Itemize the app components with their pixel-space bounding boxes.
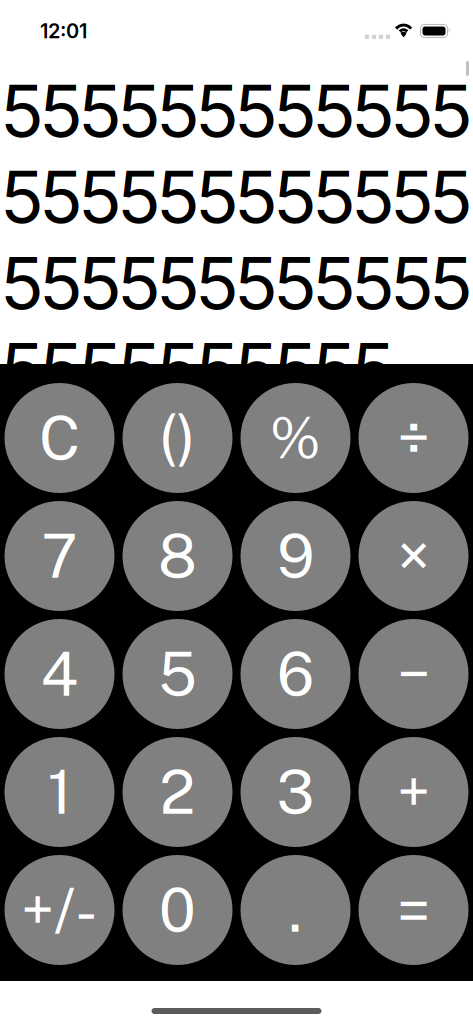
button[interactable]: 8 (122, 501, 232, 611)
staticText: . (288, 875, 302, 945)
button[interactable]: × (358, 501, 468, 611)
button[interactable]: ÷ (358, 383, 468, 493)
staticText: 3 (276, 757, 314, 827)
button[interactable]: 3 (240, 737, 350, 847)
button[interactable]: 9 (240, 501, 350, 611)
button[interactable]: + (358, 737, 468, 847)
button[interactable]: 0 (122, 855, 232, 965)
staticText: C (39, 403, 80, 473)
staticText: 0 (159, 875, 196, 945)
staticText: − (397, 639, 430, 709)
staticText: = (397, 875, 430, 945)
staticText: 6 (277, 639, 314, 709)
staticText: 9 (277, 521, 314, 591)
button[interactable]: = (358, 855, 468, 965)
staticText: + (397, 757, 430, 827)
button[interactable]: − (358, 619, 468, 729)
button[interactable]: 5 (122, 619, 232, 729)
button[interactable]: % (240, 383, 350, 493)
staticText: 5 (158, 639, 196, 709)
button[interactable]: 2 (122, 737, 232, 847)
staticText: () (159, 403, 196, 473)
staticText: ÷ (397, 403, 430, 473)
staticText: 5555555555555555555555555555555555555555… (0, 67, 473, 412)
staticText: 4 (40, 639, 78, 709)
button[interactable]: 1 (4, 737, 114, 847)
staticText: +/- (21, 875, 98, 945)
button[interactable]: () (122, 383, 232, 493)
staticText: 1 (47, 757, 71, 827)
staticText: × (397, 521, 429, 591)
button[interactable]: C (4, 383, 114, 493)
button[interactable]: 6 (240, 619, 350, 729)
staticText: 7 (41, 521, 77, 591)
staticText: 8 (158, 521, 197, 591)
staticText: 2 (159, 757, 195, 827)
button[interactable]: . (240, 855, 350, 965)
staticText: 12:01 (40, 19, 87, 43)
staticText: % (270, 405, 321, 471)
button[interactable]: +/- (4, 855, 114, 965)
button[interactable]: 7 (4, 501, 114, 611)
button[interactable]: 4 (4, 619, 114, 729)
